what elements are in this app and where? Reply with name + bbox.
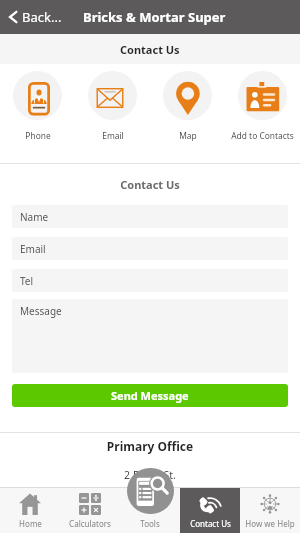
staticText: Message (20, 304, 62, 318)
button[interactable]: Home (0, 488, 60, 533)
staticText: 2 Bryce St. (0, 468, 300, 482)
staticText: Map (179, 130, 197, 141)
button[interactable]: Email (75, 64, 150, 163)
button[interactable]: Contact Us (180, 488, 240, 533)
staticText: Tel (20, 274, 34, 288)
staticText: Back... (22, 8, 62, 26)
button[interactable]: Email (12, 237, 288, 260)
staticText: Email (102, 130, 124, 141)
other: Map (163, 71, 212, 120)
staticText: Home (19, 518, 42, 529)
staticText: Primary Office (0, 438, 300, 454)
button[interactable]: Send Message (12, 384, 288, 407)
button[interactable]: Back (0, 4, 70, 30)
button[interactable]: Name (12, 205, 288, 228)
button[interactable]: Phone (0, 64, 75, 163)
button[interactable]: Map (150, 64, 225, 163)
staticText: Tools (140, 518, 160, 529)
staticText: Email (20, 242, 46, 256)
other: Email (88, 71, 137, 120)
button[interactable]: Add to Contacts (225, 64, 300, 163)
button[interactable]: Tel (12, 269, 288, 292)
staticText: Add to Contacts (231, 130, 294, 141)
other: Phone (13, 71, 62, 120)
staticText: Bricks & Mortar Super (83, 8, 226, 26)
other: Add to Contacts (238, 71, 287, 120)
staticText: Contact Us (0, 177, 300, 192)
button[interactable]: Calculators (60, 488, 120, 533)
button[interactable]: Tools (120, 488, 180, 533)
staticText: Contact Us (190, 518, 231, 529)
staticText: Phone (25, 130, 51, 141)
staticText: Name (20, 210, 49, 224)
button[interactable]: Tools (127, 468, 174, 514)
staticText: Contact Us (120, 42, 180, 57)
staticText: How we Help (245, 518, 295, 529)
staticText: Send Message (111, 388, 189, 403)
staticText: Calculators (69, 518, 111, 529)
button[interactable]: Message (12, 299, 288, 373)
button[interactable]: How we Help (240, 488, 300, 533)
